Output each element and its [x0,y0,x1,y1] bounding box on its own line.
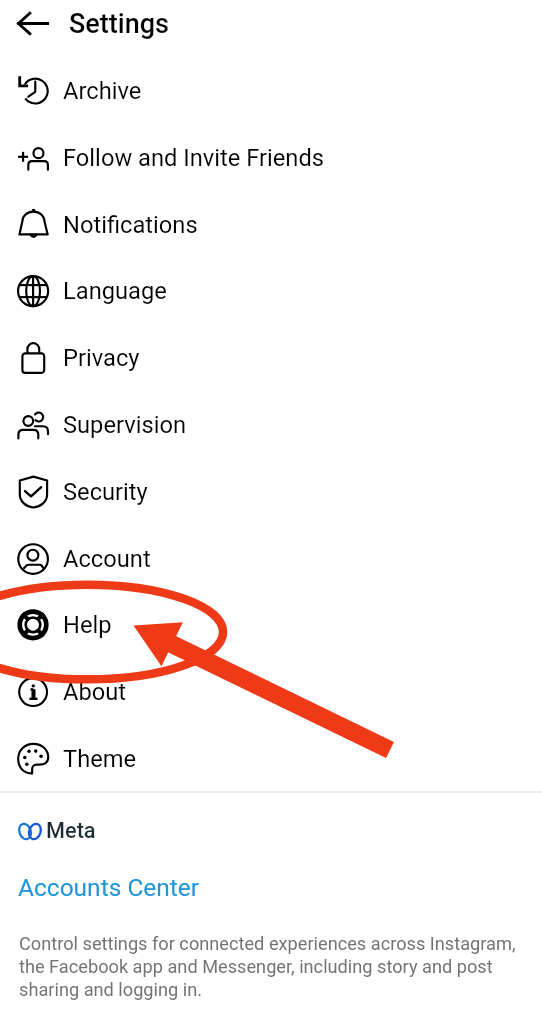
staticText: Archive [63,77,142,105]
staticText: Theme [63,745,137,773]
staticText: Notifications [63,211,198,239]
staticText: Supervision [63,411,187,439]
button[interactable]: Notifications [0,191,542,258]
button[interactable]: Theme [0,725,542,792]
button[interactable]: Language [0,257,542,324]
staticText: Security [63,478,148,506]
staticText: Follow and Invite Friends [63,144,325,172]
button[interactable]: Follow and Invite Friends [0,124,542,191]
staticText: Privacy [63,344,140,372]
button[interactable]: Accounts Center [18,873,200,902]
button[interactable]: Back [16,7,49,40]
staticText: Control settings for connected experienc… [19,933,524,1001]
staticText: Account [63,545,151,573]
staticText: About [63,678,127,706]
button[interactable]: Privacy [0,324,542,391]
button[interactable]: Help [0,591,542,658]
staticText: Meta [46,818,96,843]
staticText: Accounts Center [18,873,200,902]
button[interactable]: About [0,658,542,725]
button[interactable]: Account [0,525,542,592]
staticText: Language [63,277,167,305]
staticText: Settings [69,8,169,40]
button[interactable]: Supervision [0,391,542,458]
button[interactable]: Security [0,458,542,525]
button[interactable]: Archive [0,57,542,124]
staticText: Help [63,611,112,639]
